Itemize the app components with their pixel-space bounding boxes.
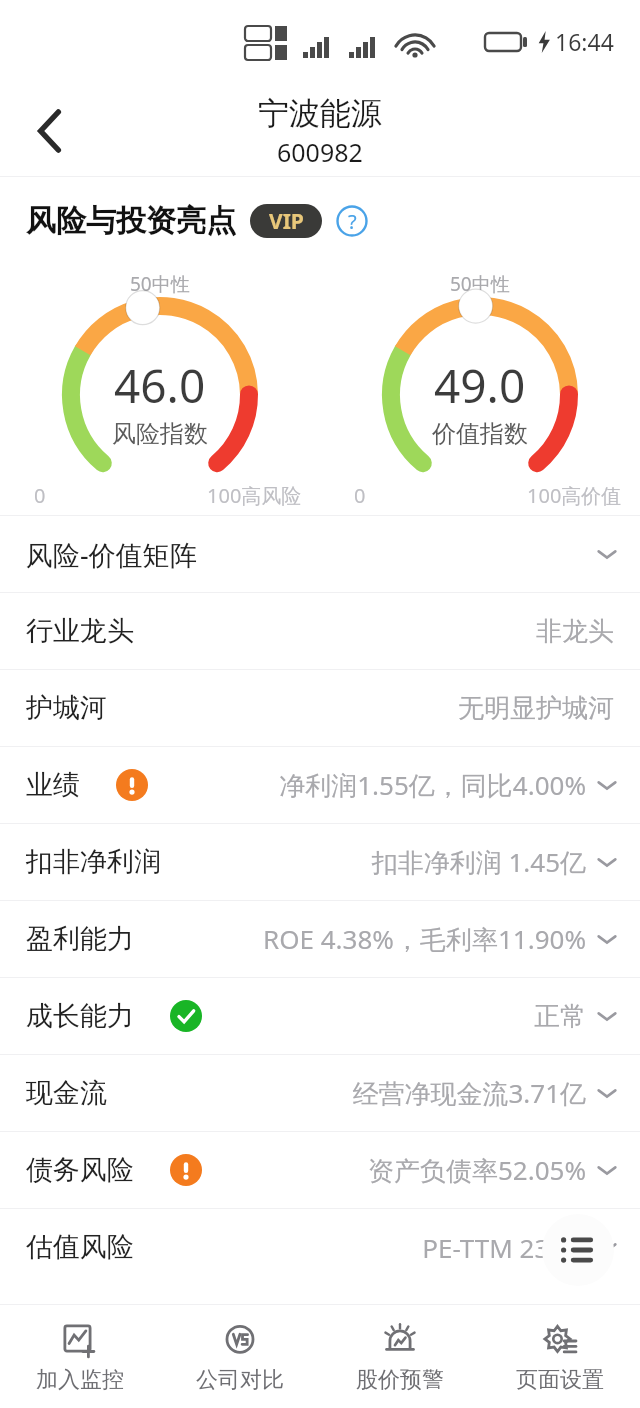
button[interactable]: 股价预警 [320,1305,480,1408]
button[interactable]: 债务风险 [0,1132,640,1208]
staticText: PE-TTM 23.22 [422,1230,586,1265]
button[interactable]: 业绩 [0,747,640,823]
staticText: 成长能力 [26,999,134,1033]
staticText: 49.0 [434,354,526,417]
staticText: 页面设置 [516,1366,604,1394]
staticText: 扣非净利润 [26,845,161,879]
staticText: VIP [269,207,304,236]
button[interactable]: 成长能力 [0,978,640,1054]
staticText: 经营净现金流3.71亿 [352,1075,586,1111]
button[interactable]: 现金流 [0,1055,640,1131]
staticText: 宁波能源 [258,94,382,133]
staticText: 16:44 [555,26,614,57]
staticText: 46.0 [114,354,206,417]
button[interactable]: 扣非净利润 [0,824,640,900]
staticText: 正常 [534,1000,586,1033]
staticText: 风险-价值矩阵 [26,536,197,573]
staticText: 无明显护城河 [458,692,614,725]
button[interactable]: 估值风险 [0,1209,640,1285]
button[interactable]: VIP [250,204,322,238]
staticText: 净利润1.55亿，同比4.00% [279,767,586,803]
staticText: 100高价值 [527,482,622,509]
staticText: 600982 [277,135,363,169]
button[interactable]: 页面设置 [480,1305,640,1408]
staticText: 盈利能力 [26,922,134,956]
staticText: 扣非净利润 1.45亿 [371,844,586,880]
staticText: 股价预警 [356,1366,444,1394]
staticText: 估值风险 [26,1230,134,1264]
staticText: 现金流 [26,1076,107,1110]
staticText: 资产负债率52.05% [367,1152,586,1188]
staticText: 非龙头 [536,615,614,648]
staticText: 行业龙头 [26,614,134,648]
staticText: 风险指数 [112,419,208,449]
button[interactable]: Help [336,205,368,237]
button[interactable]: 行业龙头 [0,593,640,669]
staticText: 护城河 [26,691,107,725]
staticText: 业绩 [26,768,80,802]
button[interactable]: 加入监控 [0,1305,160,1408]
button[interactable]: 护城河 [0,670,640,746]
button[interactable]: Catalog [542,1214,614,1286]
button[interactable]: Back [22,103,78,159]
staticText: ROE 4.38%，毛利率11.90% [263,921,586,957]
staticText: 债务风险 [26,1153,134,1187]
button[interactable]: 盈利能力 [0,901,640,977]
staticText: 0 [354,482,366,509]
staticText: 加入监控 [36,1366,124,1394]
staticText: 0 [34,482,46,509]
staticText: 公司对比 [196,1366,284,1394]
staticText: 100高风险 [207,482,302,509]
staticText: 50中性 [450,271,510,297]
button[interactable]: 风险-价值矩阵 [0,516,640,592]
staticText: 价值指数 [432,419,528,449]
button[interactable]: 公司对比 [160,1305,320,1408]
staticText: 风险与投资亮点 [26,202,236,240]
staticText: ? [348,208,357,235]
staticText: 50中性 [130,271,190,297]
